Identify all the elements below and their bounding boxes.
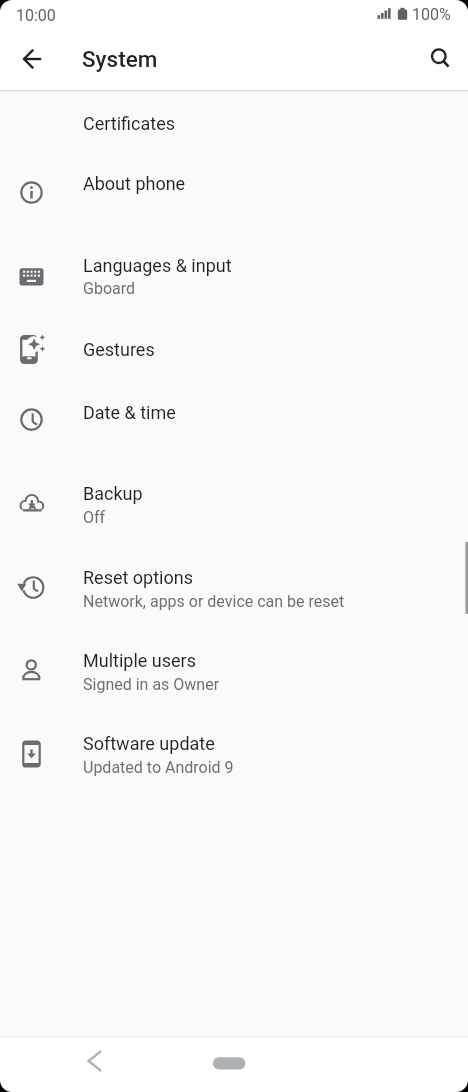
staticText: 100% <box>412 5 451 24</box>
staticText: Multiple users <box>83 650 196 671</box>
staticText: Off <box>83 508 106 527</box>
button[interactable]: Gestures <box>0 314 468 381</box>
button[interactable]: Backup <box>0 458 468 546</box>
button[interactable]: Languages & input <box>0 231 468 314</box>
staticText: Updated to Android 9 <box>83 758 234 777</box>
staticText: System <box>82 46 158 72</box>
button[interactable] <box>72 1039 116 1083</box>
button[interactable]: Multiple users <box>0 630 468 713</box>
button[interactable]: About phone <box>0 154 468 232</box>
button[interactable] <box>10 37 54 81</box>
button[interactable]: Date & time <box>0 381 468 459</box>
button[interactable]: Reset options <box>0 546 468 630</box>
staticText: Gestures <box>83 339 155 360</box>
staticText: Software update <box>83 733 215 754</box>
staticText: Gboard <box>83 279 136 298</box>
button[interactable] <box>417 35 461 79</box>
staticText: Signed in as Owner <box>83 675 220 694</box>
staticText: 10:00 <box>16 6 56 25</box>
staticText: Date & time <box>83 402 176 423</box>
button[interactable]: Certificates <box>0 93 468 154</box>
staticText: Network, apps or device can be reset <box>83 592 345 611</box>
staticText: About phone <box>83 173 186 194</box>
button[interactable]: Software update <box>0 713 468 796</box>
button[interactable] <box>205 1049 253 1077</box>
staticText: Languages & input <box>83 255 232 276</box>
staticText: Backup <box>83 483 143 504</box>
staticText: Reset options <box>83 567 193 588</box>
staticText: Certificates <box>83 113 175 134</box>
